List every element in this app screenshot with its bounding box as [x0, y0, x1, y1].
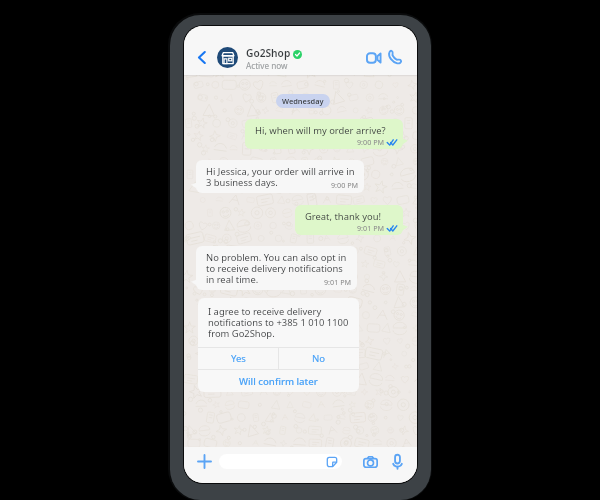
staticText: Hi, when will my order arrive? [255, 124, 386, 137]
staticText: Wednesday [282, 96, 324, 106]
button[interactable]: Voice message [387, 451, 408, 472]
button[interactable]: No problem. You can also opt in to recei… [196, 246, 357, 290]
staticText: 9:01 PM [357, 223, 384, 233]
button[interactable]: Voice call [384, 46, 406, 68]
button[interactable]: Camera [360, 451, 381, 472]
button[interactable]: Yes [198, 348, 278, 369]
button[interactable]: Video call [362, 47, 384, 69]
button[interactable]: Hi Jessica, your order will arrive in 3 … [196, 160, 364, 193]
staticText: I agree to receive delivery notification… [208, 305, 349, 340]
button[interactable]: Hi, when will my order arrive? [245, 119, 403, 149]
button[interactable]: Go2Shop [215, 40, 355, 74]
staticText: 9:01 PM [324, 277, 351, 287]
staticText: Hi Jessica, your order will arrive in 3 … [206, 165, 355, 189]
staticText: No problem. You can also opt in to recei… [206, 251, 347, 286]
staticText: No [312, 352, 326, 365]
button[interactable]: Back [191, 46, 213, 68]
staticText: 9:00 PM [357, 137, 384, 147]
staticText: Go2Shop [246, 46, 291, 60]
button[interactable]: Great, thank you! [295, 205, 403, 235]
button[interactable]: No [279, 348, 359, 369]
button[interactable]: Message [219, 454, 342, 469]
button[interactable]: Attach [194, 451, 215, 472]
staticText: Will confirm later [239, 375, 318, 388]
staticText: 9:00 PM [331, 180, 358, 190]
staticText: Great, thank you! [305, 210, 381, 223]
button[interactable]: Will confirm later [198, 370, 359, 392]
staticText: Active now [246, 60, 288, 71]
staticText: Yes [231, 352, 246, 365]
